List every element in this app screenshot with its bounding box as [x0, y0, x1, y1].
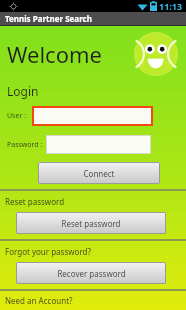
staticText: Tennis Partner Search — [5, 13, 92, 24]
staticText: Password : — [7, 140, 43, 150]
staticText: Connect — [83, 168, 115, 179]
staticText: Login — [7, 83, 39, 99]
staticText: Reset password — [5, 196, 65, 207]
button[interactable] — [46, 135, 151, 154]
staticText: Welcome — [7, 39, 102, 69]
staticText: 11:13 — [159, 0, 183, 12]
staticText: Reset password — [61, 218, 121, 229]
staticText: User : — [7, 111, 27, 121]
button[interactable]: Reset password — [16, 212, 166, 234]
other: Tennis ball logo — [134, 32, 178, 76]
button[interactable] — [32, 106, 153, 126]
button[interactable]: Connect — [38, 162, 160, 184]
staticText: Need an Account? — [5, 295, 73, 306]
staticText: Recover password — [57, 268, 126, 279]
staticText: Forgot your password? — [5, 246, 91, 257]
button[interactable]: Recover password — [16, 262, 166, 284]
